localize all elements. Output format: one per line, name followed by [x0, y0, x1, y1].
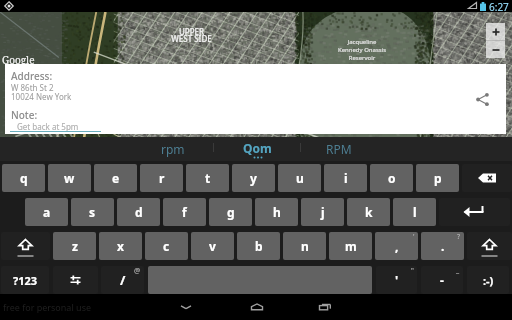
staticText: ' [395, 272, 399, 288]
staticText: Jacqueline Kennedy Onassis Reservoir [337, 38, 387, 62]
staticText: " [411, 266, 414, 276]
button[interactable]: e [94, 164, 137, 192]
staticText: a [43, 204, 51, 220]
button[interactable]: y [232, 164, 275, 192]
staticText: h [273, 204, 281, 220]
staticText: d [135, 204, 143, 220]
staticText: ' [413, 232, 415, 242]
staticText: 6:27 [489, 0, 509, 12]
button[interactable]: :-) [467, 266, 509, 294]
button[interactable]: h [255, 198, 298, 226]
staticText: 10024 New York [11, 91, 72, 102]
button[interactable]: l [393, 198, 436, 226]
staticText: W 86th St 2 [11, 82, 54, 93]
staticText: t [205, 170, 211, 186]
button[interactable]: u [278, 164, 321, 192]
button[interactable]: rpm [132, 137, 213, 161]
staticText: i [344, 170, 348, 186]
staticText: Google [2, 53, 35, 67]
button[interactable]: k [347, 198, 390, 226]
staticText: u [296, 170, 304, 186]
staticText: :-) [483, 273, 494, 288]
staticText: Qom [243, 140, 272, 156]
staticText: Get back at 5pm [17, 121, 79, 132]
staticText: y [250, 170, 257, 186]
button[interactable]: Qom [214, 137, 300, 161]
staticText: e [112, 170, 120, 186]
button[interactable]: Recent apps [300, 297, 350, 317]
button[interactable]: s [71, 198, 114, 226]
button[interactable]: - [421, 266, 463, 294]
staticText: s [89, 204, 96, 220]
staticText: / [120, 271, 126, 289]
staticText: ?123 [13, 273, 38, 288]
button[interactable]: Home [232, 297, 282, 317]
staticText: Note: [11, 108, 38, 122]
button[interactable]: d [117, 198, 160, 226]
staticText: f [182, 204, 187, 220]
staticText: j [321, 204, 325, 220]
button[interactable]: Address: [5, 64, 506, 134]
button[interactable]: Enter [439, 198, 510, 226]
staticText: n [301, 238, 309, 254]
button[interactable]: . [421, 232, 464, 260]
button[interactable]: t [186, 164, 229, 192]
button[interactable]: Input settings [53, 266, 98, 294]
button[interactable]: o [370, 164, 413, 192]
button[interactable]: Zoom in [486, 23, 505, 40]
button[interactable]: Backspace [462, 164, 512, 192]
staticText: m [345, 238, 357, 254]
button[interactable]: Shift [1, 232, 50, 260]
button[interactable]: j [301, 198, 344, 226]
button[interactable]: a [25, 198, 68, 226]
button[interactable]: g [209, 198, 252, 226]
button[interactable]: / [101, 266, 144, 294]
button[interactable]: z [53, 232, 96, 260]
staticText: @ [134, 266, 141, 276]
staticText: ? [457, 232, 461, 242]
button[interactable]: RPM [301, 137, 377, 161]
button[interactable]: Back [161, 297, 211, 317]
staticText: o [388, 170, 396, 186]
staticText: p [434, 170, 442, 186]
button[interactable]: f [163, 198, 206, 226]
staticText: , [395, 238, 399, 254]
button[interactable]: ?123 [1, 266, 49, 294]
button[interactable]: Share [472, 89, 492, 109]
button[interactable]: r [140, 164, 183, 192]
button[interactable]: x [99, 232, 142, 260]
staticText: _ [456, 266, 460, 276]
staticText: b [255, 238, 263, 254]
button[interactable]: ' [376, 266, 417, 294]
staticText: rpm [161, 141, 185, 157]
staticText: k [365, 204, 373, 220]
staticText: UPPER WEST SIDE [171, 26, 212, 45]
staticText: x [117, 238, 124, 254]
button[interactable]: Zoom out [486, 41, 505, 58]
staticText: - [440, 272, 444, 288]
staticText: c [163, 238, 170, 254]
staticText: RPM [326, 141, 352, 157]
staticText: q [20, 170, 28, 186]
staticText: g [227, 204, 235, 220]
staticText: z [72, 238, 78, 254]
button[interactable]: w [48, 164, 91, 192]
button[interactable]: v [191, 232, 234, 260]
button[interactable]: p [416, 164, 459, 192]
button[interactable]: q [2, 164, 45, 192]
staticText: w [64, 170, 75, 186]
button[interactable]: m [329, 232, 372, 260]
button[interactable]: b [237, 232, 280, 260]
staticText: . [441, 238, 445, 254]
staticText: Address: [11, 69, 53, 83]
staticText: l [413, 204, 417, 220]
button[interactable]: c [145, 232, 188, 260]
button[interactable]: , [375, 232, 418, 260]
staticText: v [209, 238, 216, 254]
staticText: r [159, 170, 165, 186]
button[interactable]: n [283, 232, 326, 260]
button[interactable]: Shift [467, 232, 512, 260]
staticText: free for personal use [3, 301, 92, 313]
button[interactable]: i [324, 164, 367, 192]
